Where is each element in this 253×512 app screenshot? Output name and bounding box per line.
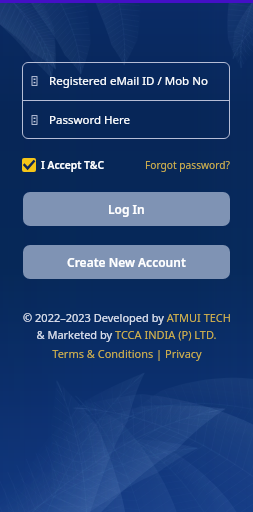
button[interactable]: I Accept T&C bbox=[22, 158, 104, 172]
other: Field icon bbox=[32, 76, 37, 86]
button[interactable]: Terms & Conditions | Privacy bbox=[52, 346, 202, 361]
staticText: Create New Account bbox=[67, 254, 186, 270]
staticText: Log In bbox=[108, 201, 145, 217]
button[interactable]: Field icon bbox=[22, 62, 230, 100]
staticText: Registered eMail ID / Mob No bbox=[49, 73, 208, 89]
button[interactable]: Create New Account bbox=[23, 245, 230, 279]
staticText: © 2022–2023 Developed by ATMUI TECH bbox=[23, 310, 231, 325]
other: Field icon bbox=[32, 115, 37, 125]
button[interactable]: Log In bbox=[23, 192, 230, 226]
staticText: & Marketed by TCCA INDIA (P) LTD. bbox=[36, 327, 217, 342]
button[interactable]: Forgot password? bbox=[145, 158, 230, 172]
staticText: I Accept T&C bbox=[41, 158, 104, 172]
button[interactable]: Field icon bbox=[22, 101, 230, 139]
staticText: Password Here bbox=[49, 112, 131, 128]
